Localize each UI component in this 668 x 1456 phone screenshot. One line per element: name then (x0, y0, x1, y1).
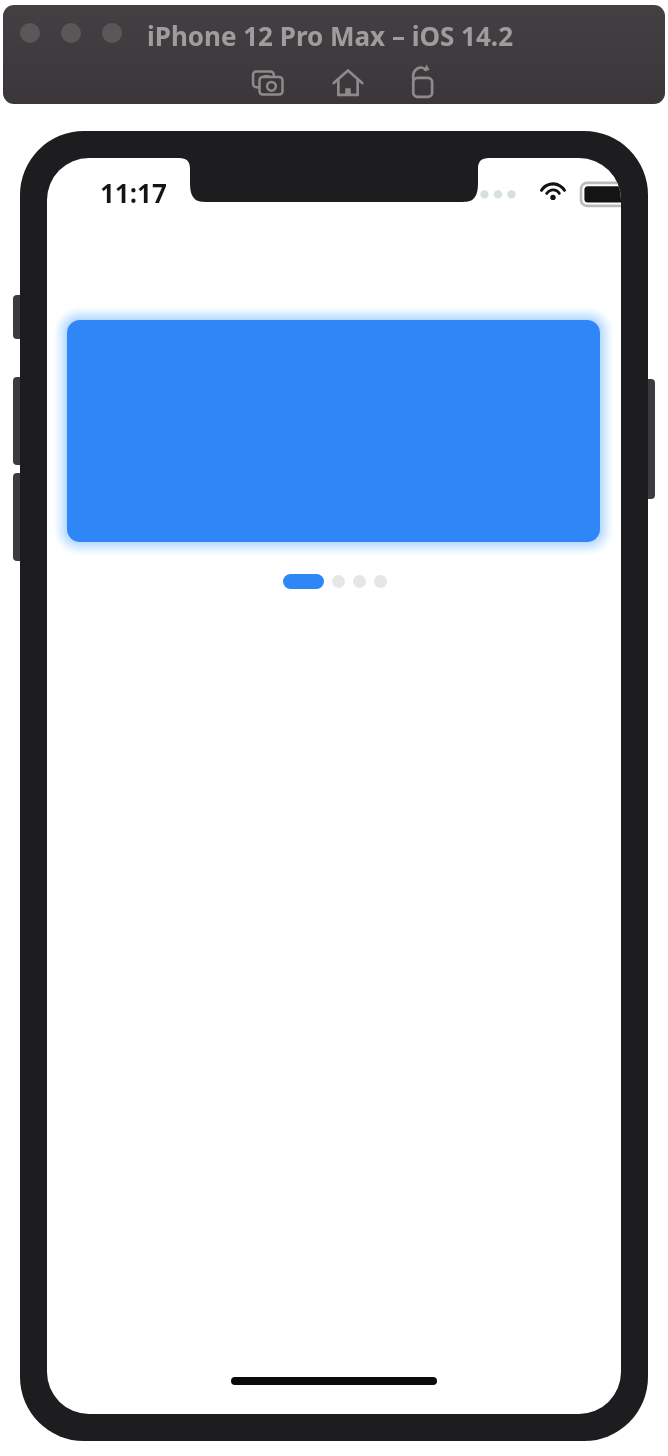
button[interactable]: Page 2 (332, 575, 345, 588)
button[interactable]: Featured card (67, 320, 600, 542)
button[interactable]: Minimize (61, 23, 81, 43)
button[interactable]: Rotate (399, 60, 445, 104)
button[interactable]: Close (20, 23, 40, 43)
button[interactable]: Screenshot (248, 60, 294, 104)
staticText: iPhone 12 Pro Max – iOS 14.2 (147, 18, 514, 53)
staticText: 11:17 (100, 175, 167, 210)
button[interactable]: Page 4 (374, 575, 387, 588)
button[interactable]: Zoom (102, 23, 122, 43)
button[interactable]: Page 1 (283, 574, 324, 589)
button[interactable]: Page 3 (353, 575, 366, 588)
button[interactable]: Home (325, 60, 371, 104)
